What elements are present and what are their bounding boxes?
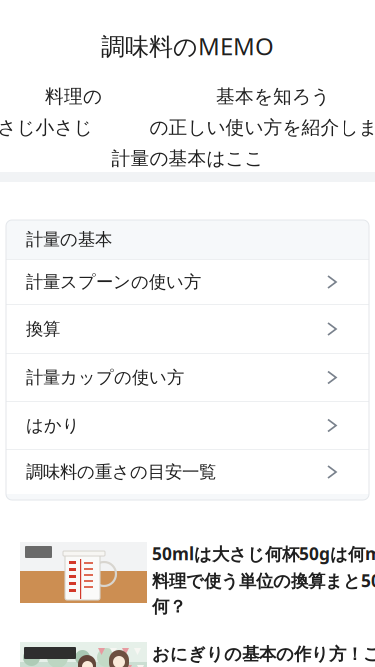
- button[interactable]: 計量スプーンの使い方: [6, 260, 369, 304]
- button[interactable]: 調味料の重さの目安一覧: [6, 450, 369, 494]
- staticText: 換算: [26, 318, 60, 340]
- staticText: 何？: [152, 596, 186, 617]
- staticText: おにぎりの基本の作り方！ごはん30分で: [152, 642, 375, 665]
- button[interactable]: 計量カップの使い方: [6, 354, 369, 401]
- staticText: 大さじ小さじ の正しい使い方を紹介します: [0, 116, 375, 139]
- staticText: 調味料のMEMO: [101, 30, 274, 62]
- staticText: 計量の基本: [26, 229, 112, 250]
- staticText: 計量カップの使い方: [26, 367, 184, 388]
- button[interactable]: 換算: [6, 305, 369, 353]
- staticText: 料理で使う単位の換算まと50ccって: [152, 569, 375, 592]
- staticText: 料理の 基本を知ろう: [45, 85, 330, 108]
- button[interactable]: はかり: [6, 402, 369, 449]
- button[interactable]: おにぎりの基本の作り方！ごはん30分で: [20, 642, 375, 667]
- staticText: 計量の基本はここ: [111, 147, 263, 170]
- staticText: はかり: [26, 415, 80, 436]
- staticText: 調味料の重さの目安一覧: [26, 461, 216, 483]
- staticText: 50mlは大さじ何杯50gは何ml？: [152, 542, 375, 565]
- button[interactable]: 50mlは大さじ何杯50gは何ml？: [20, 542, 375, 617]
- staticText: 計量スプーンの使い方: [26, 271, 201, 293]
